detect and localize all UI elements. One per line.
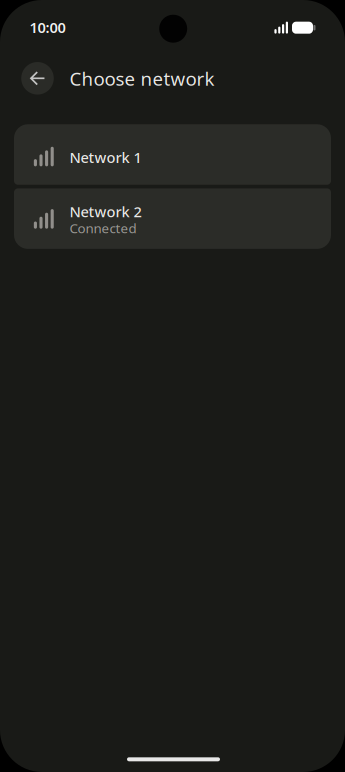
staticText: Connected — [69, 219, 136, 237]
button[interactable]: Back — [21, 62, 53, 94]
button[interactable]: Network 1 — [14, 124, 331, 185]
staticText: Network 2 — [69, 202, 141, 221]
staticText: Network 1 — [69, 147, 141, 167]
staticText: Choose network — [69, 66, 214, 91]
staticText: 10:00 — [29, 17, 65, 37]
button[interactable]: Network 2 — [14, 188, 331, 249]
